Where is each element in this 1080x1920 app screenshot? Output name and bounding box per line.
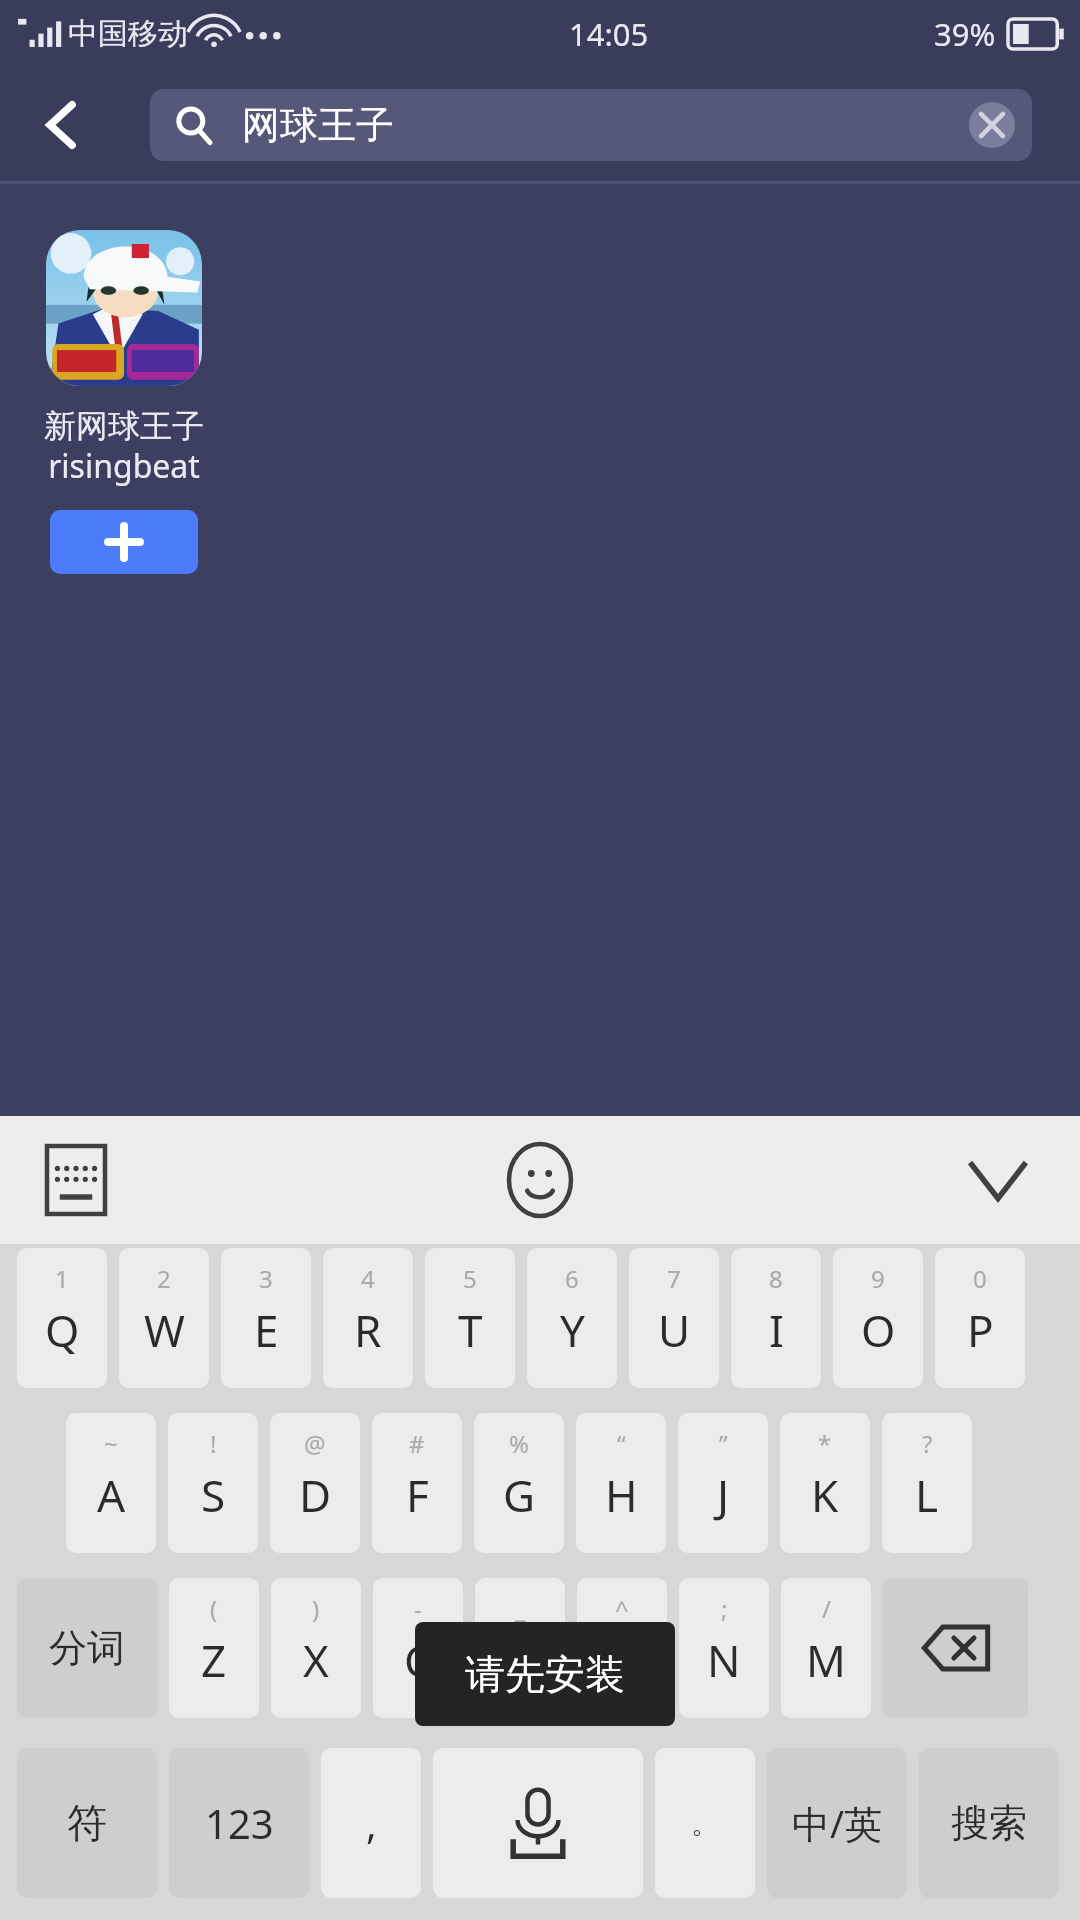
staticText: G xyxy=(503,1465,536,1525)
staticText: / xyxy=(822,1592,831,1625)
staticText: 请先安装 xyxy=(465,1649,625,1699)
staticText: V xyxy=(507,1630,534,1690)
staticText: 符 xyxy=(67,1798,107,1848)
button[interactable]: 3 xyxy=(221,1248,311,1388)
staticText: C xyxy=(404,1630,432,1690)
button[interactable]: 5 xyxy=(425,1248,515,1388)
staticText: N xyxy=(707,1630,741,1690)
button[interactable]: 8 xyxy=(731,1248,821,1388)
staticText: 7 xyxy=(667,1262,681,1295)
staticText: J xyxy=(717,1465,730,1525)
button[interactable]: 。 xyxy=(655,1748,755,1898)
staticText: W xyxy=(144,1300,185,1360)
button[interactable]: Voice input xyxy=(433,1748,643,1898)
button[interactable]: Back xyxy=(14,77,110,173)
staticText: ! xyxy=(210,1427,217,1460)
button[interactable]: 123 xyxy=(169,1748,309,1898)
staticText: T xyxy=(458,1300,483,1360)
button[interactable]: 4 xyxy=(323,1248,413,1388)
staticText: * xyxy=(818,1427,832,1460)
staticText: Z xyxy=(201,1630,227,1690)
staticText: 123 xyxy=(205,1796,274,1850)
staticText: ) xyxy=(312,1592,320,1625)
staticText: ~ xyxy=(104,1427,118,1460)
staticText: F xyxy=(406,1465,429,1525)
staticText: 9 xyxy=(871,1262,885,1295)
staticText: A xyxy=(97,1465,126,1525)
staticText: 。 xyxy=(691,1806,719,1841)
staticText: 中/英 xyxy=(792,1797,883,1849)
button[interactable]: 中/英 xyxy=(767,1748,907,1898)
staticText: 中国移动 xyxy=(68,15,188,53)
staticText: 3 xyxy=(259,1262,273,1295)
button[interactable]: Install app xyxy=(50,510,198,574)
staticText: S xyxy=(201,1465,226,1525)
button[interactable]: “ xyxy=(576,1413,666,1553)
staticText: ; xyxy=(721,1592,728,1625)
staticText: E xyxy=(254,1300,279,1360)
button[interactable]: 2 xyxy=(119,1248,209,1388)
staticText: @ xyxy=(304,1427,326,1460)
button[interactable]: ~ xyxy=(66,1413,156,1553)
staticText: L xyxy=(915,1465,939,1525)
button[interactable]: _ xyxy=(475,1578,565,1718)
button[interactable]: 1 xyxy=(17,1248,107,1388)
staticText: K xyxy=(811,1465,839,1525)
staticText: 0 xyxy=(973,1262,987,1295)
staticText: 搜索 xyxy=(951,1799,1027,1847)
button[interactable]: % xyxy=(474,1413,564,1553)
button[interactable]: , xyxy=(321,1748,421,1898)
staticText: 1 xyxy=(55,1262,69,1295)
button[interactable]: Clear text xyxy=(962,95,1022,155)
button[interactable]: 网球王子 xyxy=(150,89,1032,161)
button[interactable]: ? xyxy=(882,1413,972,1553)
button[interactable]: 7 xyxy=(629,1248,719,1388)
staticText: - xyxy=(414,1592,422,1625)
staticText: 39% xyxy=(934,13,996,55)
button[interactable]: ! xyxy=(168,1413,258,1553)
button[interactable]: ) xyxy=(271,1578,361,1718)
button[interactable]: ; xyxy=(679,1578,769,1718)
button[interactable]: * xyxy=(780,1413,870,1553)
button[interactable]: Backspace xyxy=(883,1578,1028,1718)
staticText: ^ xyxy=(615,1592,629,1625)
button[interactable]: 符 xyxy=(17,1748,157,1898)
staticText: I xyxy=(769,1300,784,1360)
button[interactable]: 分词 xyxy=(17,1578,157,1718)
button[interactable]: Emoji xyxy=(488,1128,592,1232)
staticText: # xyxy=(409,1427,425,1460)
button[interactable]: / xyxy=(781,1578,871,1718)
button[interactable]: 0 xyxy=(935,1248,1025,1388)
staticText: H xyxy=(605,1465,638,1525)
staticText: ? xyxy=(922,1427,933,1460)
button[interactable]: ( xyxy=(169,1578,259,1718)
button[interactable]: 6 xyxy=(527,1248,617,1388)
staticText: Y xyxy=(560,1300,585,1360)
button[interactable]: ^ xyxy=(577,1578,667,1718)
staticText: “ xyxy=(617,1427,626,1460)
button[interactable]: - xyxy=(373,1578,463,1718)
staticText: D xyxy=(299,1465,332,1525)
button[interactable]: 9 xyxy=(833,1248,923,1388)
button[interactable]: @ xyxy=(270,1413,360,1553)
staticText: U xyxy=(658,1300,691,1360)
staticText: 分词 xyxy=(49,1624,125,1672)
button[interactable]: Hide keyboard xyxy=(948,1130,1048,1230)
staticText: M xyxy=(806,1630,846,1690)
staticText: 8 xyxy=(769,1262,783,1295)
staticText: 14:05 xyxy=(569,13,649,55)
button[interactable]: # xyxy=(372,1413,462,1553)
button[interactable]: ” xyxy=(678,1413,768,1553)
button[interactable]: Switch keyboard xyxy=(28,1132,124,1228)
staticText: 5 xyxy=(463,1262,477,1295)
staticText: ( xyxy=(210,1592,218,1625)
staticText: _ xyxy=(515,1592,526,1625)
staticText: 6 xyxy=(565,1262,579,1295)
button[interactable]: 搜索 xyxy=(919,1748,1059,1898)
staticText: B xyxy=(608,1630,637,1690)
staticText: O xyxy=(861,1300,896,1360)
staticText: ” xyxy=(719,1427,728,1460)
staticText: % xyxy=(509,1427,529,1460)
staticText: 2 xyxy=(157,1262,171,1295)
button[interactable]: 新网球王子 risingbeat icon xyxy=(46,230,202,386)
